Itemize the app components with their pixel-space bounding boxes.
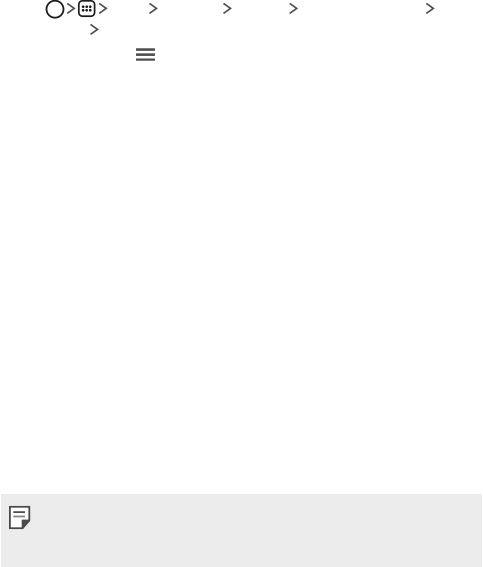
button[interactable]: Home — [46, 1, 63, 18]
button[interactable]: Notes — [1, 494, 482, 567]
button[interactable]: All apps — [79, 1, 95, 16]
button[interactable]: Menu — [136, 48, 155, 61]
